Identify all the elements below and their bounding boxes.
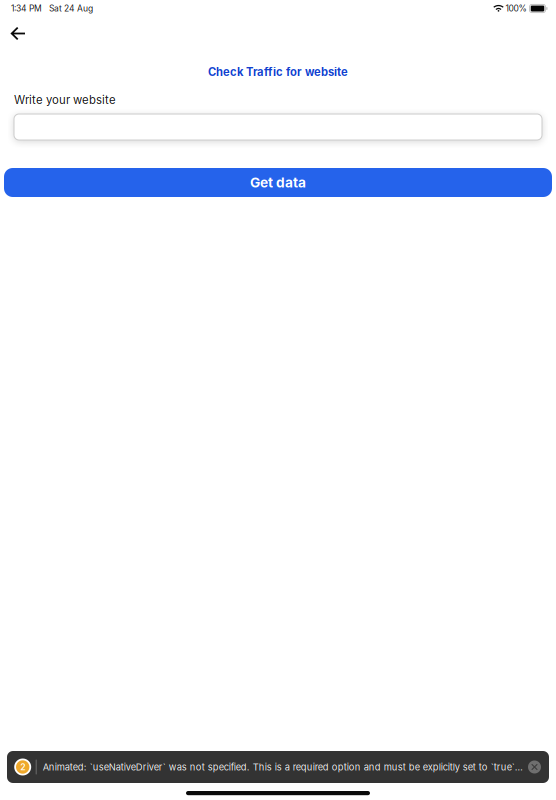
staticText: Animated: `useNativeDriver` was not spec… xyxy=(43,761,523,773)
button[interactable]: Website address field xyxy=(14,114,542,140)
staticText: 100% xyxy=(505,3,526,14)
button[interactable]: Back xyxy=(0,18,36,48)
button[interactable]: Get data xyxy=(4,168,552,197)
staticText: Check Traffic for website xyxy=(208,65,348,79)
staticText: 2 xyxy=(20,762,25,772)
staticText: Write your website xyxy=(14,93,116,107)
staticText: Sat 24 Aug xyxy=(49,3,93,14)
staticText: 1:34 PM xyxy=(11,3,42,14)
button[interactable]: Dismiss warning xyxy=(528,760,541,773)
staticText: Get data xyxy=(250,174,306,191)
